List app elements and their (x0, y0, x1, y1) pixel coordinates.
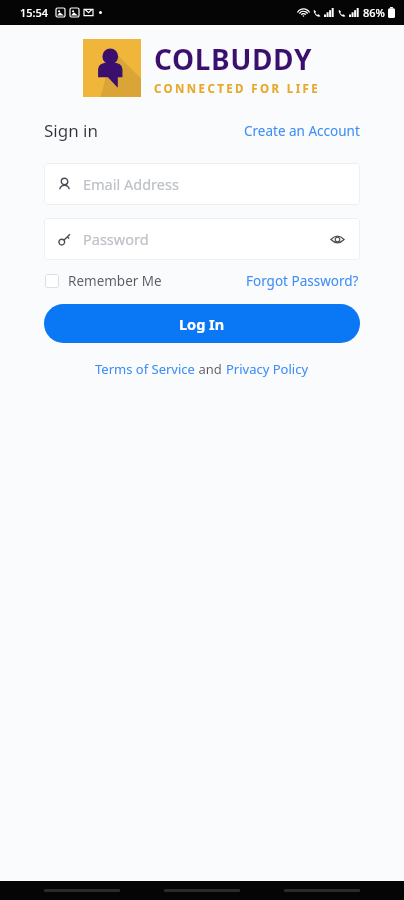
staticText: 86% (363, 5, 385, 20)
staticText: Password (83, 229, 149, 249)
button[interactable]: Create an Account (244, 122, 360, 140)
staticText: Log In (179, 314, 225, 334)
button[interactable]: Remember Me (45, 272, 162, 290)
staticText: Sign in (44, 119, 98, 142)
staticText: CONNECTED FOR LIFE (154, 81, 321, 97)
button[interactable]: Email Address (44, 163, 360, 205)
staticText: Privacy Policy (226, 360, 309, 378)
staticText: Remember Me (68, 272, 162, 290)
button[interactable]: Password (44, 218, 360, 260)
staticText: Terms of Service (95, 360, 195, 378)
staticText: 15:54 (20, 5, 49, 20)
staticText: and (195, 360, 226, 378)
button[interactable]: Show password (326, 228, 348, 250)
staticText: COLBUDDY (154, 40, 313, 78)
button[interactable]: Privacy Policy (226, 360, 309, 378)
button[interactable]: Terms of Service (95, 360, 195, 378)
button[interactable]: Forgot Password? (246, 272, 359, 290)
staticText: Forgot Password? (246, 272, 359, 290)
staticText: Email Address (83, 174, 179, 194)
button[interactable]: Log In (44, 304, 360, 343)
staticText: Create an Account (244, 122, 360, 140)
